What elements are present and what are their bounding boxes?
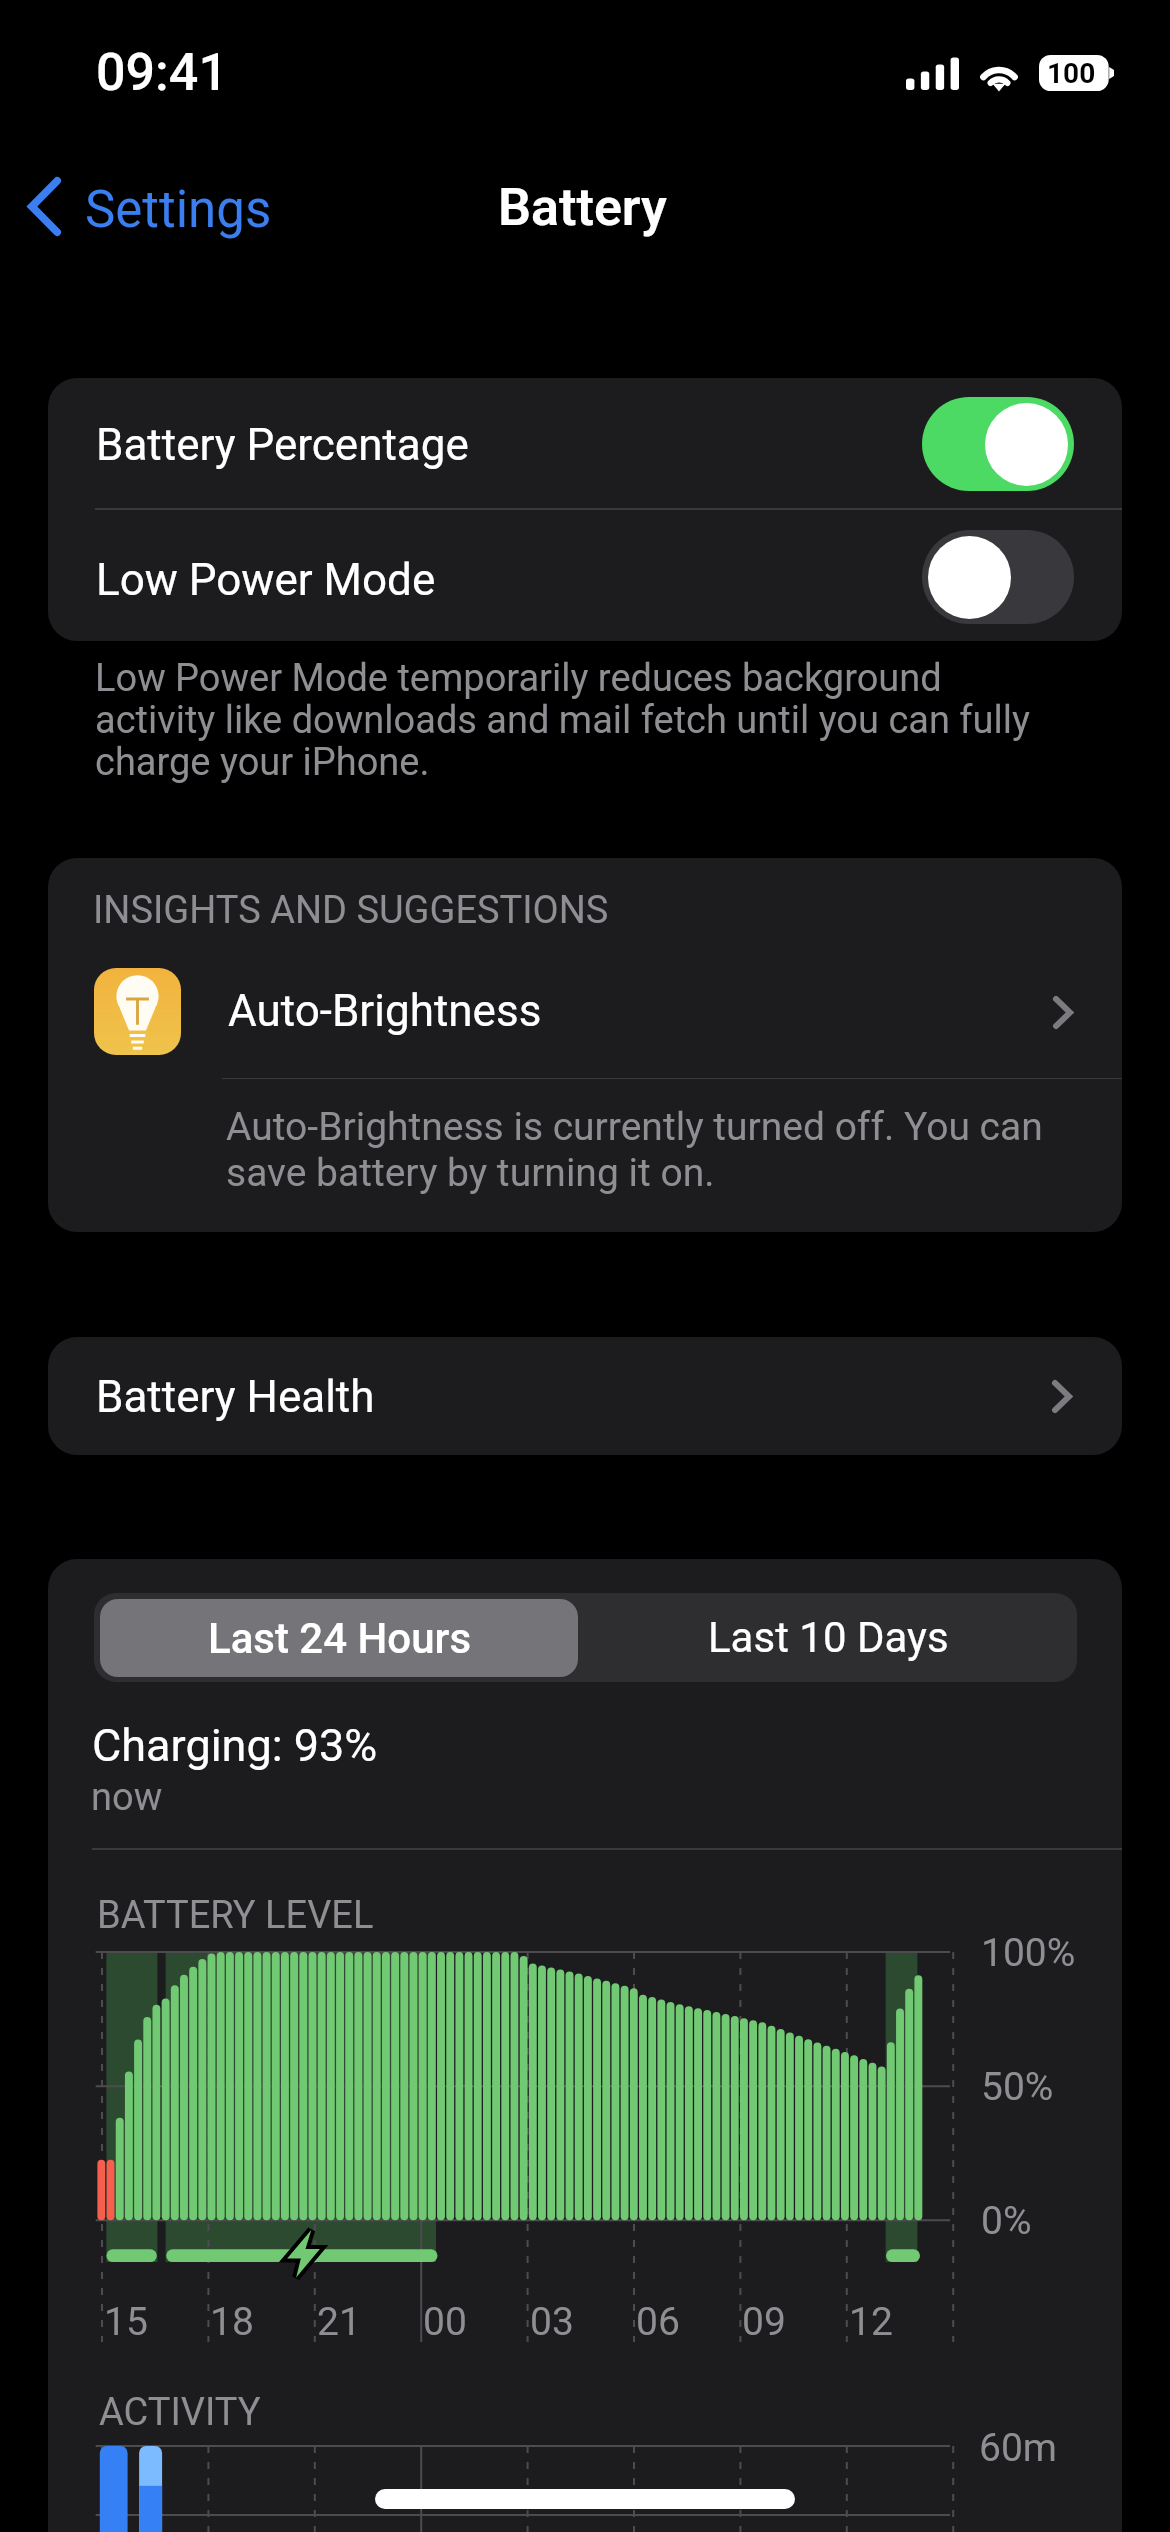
staticText: Last 10 Days: [708, 1613, 949, 1662]
button[interactable]: Battery Percentage: [48, 378, 1122, 508]
staticText: Battery: [498, 177, 667, 238]
staticText: 18: [210, 2299, 254, 2345]
staticText: Auto-Brightness is currently turned off.…: [226, 1104, 1086, 1196]
staticText: Low Power Mode: [96, 554, 436, 606]
staticText: 100: [1047, 57, 1096, 90]
staticText: BATTERY LEVEL: [97, 1893, 374, 1938]
staticText: Settings: [85, 180, 272, 240]
staticText: Battery Percentage: [96, 419, 469, 471]
button[interactable]: Last 10 Days: [586, 1593, 1071, 1682]
staticText: Charging: 93%: [92, 1719, 378, 1772]
staticText: 0%: [981, 2198, 1032, 2244]
staticText: ACTIVITY: [99, 2390, 261, 2435]
staticText: 15: [104, 2299, 148, 2345]
button[interactable]: Low Power Mode: [48, 510, 1122, 641]
staticText: 12: [849, 2299, 893, 2345]
other: Auto-Brightness: [94, 968, 181, 1055]
staticText: 03: [530, 2299, 574, 2345]
staticText: 60m: [979, 2425, 1058, 2471]
button[interactable]: Switch off: [922, 530, 1074, 624]
button[interactable]: Last 24 Hours: [100, 1599, 578, 1677]
staticText: 50%: [981, 2064, 1054, 2110]
button[interactable]: Settings: [14, 160, 292, 258]
staticText: now: [91, 1775, 163, 1820]
staticText: 100%: [981, 1930, 1076, 1976]
staticText: Battery Health: [96, 1371, 375, 1423]
staticText: INSIGHTS AND SUGGESTIONS: [93, 888, 609, 933]
staticText: 09:41: [96, 42, 228, 103]
staticText: Low Power Mode temporarily reduces backg…: [95, 656, 1040, 785]
staticText: Last 24 Hours: [208, 1614, 471, 1663]
button[interactable]: Battery Health: [48, 1337, 1122, 1455]
staticText: 09: [742, 2299, 786, 2345]
button[interactable]: Auto-Brightness: [48, 948, 1122, 1076]
staticText: Auto-Brightness: [228, 985, 542, 1037]
staticText: 06: [636, 2299, 680, 2345]
staticText: 00: [423, 2299, 467, 2345]
button[interactable]: Switch on: [922, 397, 1074, 491]
staticText: 21: [317, 2299, 361, 2345]
